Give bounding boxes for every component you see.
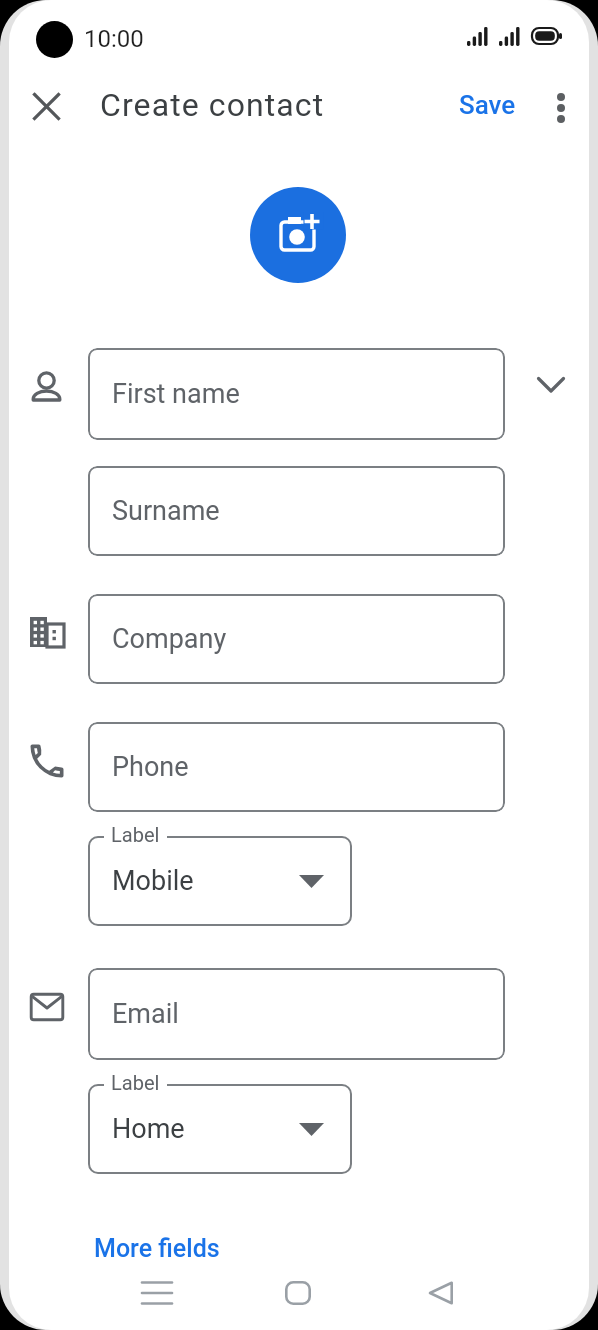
staticText: Phone xyxy=(112,751,189,783)
button[interactable] xyxy=(22,82,70,130)
button[interactable]: Mobile xyxy=(88,836,352,926)
staticText: Home xyxy=(112,1113,185,1145)
button[interactable]: Phone xyxy=(88,722,505,812)
button[interactable]: First name xyxy=(88,348,505,440)
button[interactable]: Company xyxy=(88,594,505,684)
button[interactable] xyxy=(541,82,581,130)
button[interactable] xyxy=(127,1263,187,1323)
staticText: Email xyxy=(112,998,179,1030)
staticText: 10:00 xyxy=(84,25,144,53)
staticText: First name xyxy=(112,378,240,410)
button[interactable] xyxy=(528,362,574,408)
button[interactable]: More fields xyxy=(82,1222,232,1275)
staticText: Surname xyxy=(112,495,220,527)
staticText: More fields xyxy=(94,1234,220,1263)
staticText: Label xyxy=(111,1071,160,1094)
button[interactable]: Save xyxy=(447,84,528,126)
button[interactable]: Home xyxy=(88,1084,352,1174)
staticText: Company xyxy=(112,623,227,655)
button[interactable] xyxy=(410,1263,470,1323)
button[interactable]: Email xyxy=(88,968,505,1060)
button[interactable] xyxy=(250,187,346,283)
staticText: Mobile xyxy=(112,865,194,897)
button[interactable]: Surname xyxy=(88,466,505,556)
staticText: Label xyxy=(111,823,160,846)
button[interactable] xyxy=(268,1263,328,1323)
staticText: Create contact xyxy=(100,86,325,124)
staticText: Save xyxy=(459,90,516,120)
